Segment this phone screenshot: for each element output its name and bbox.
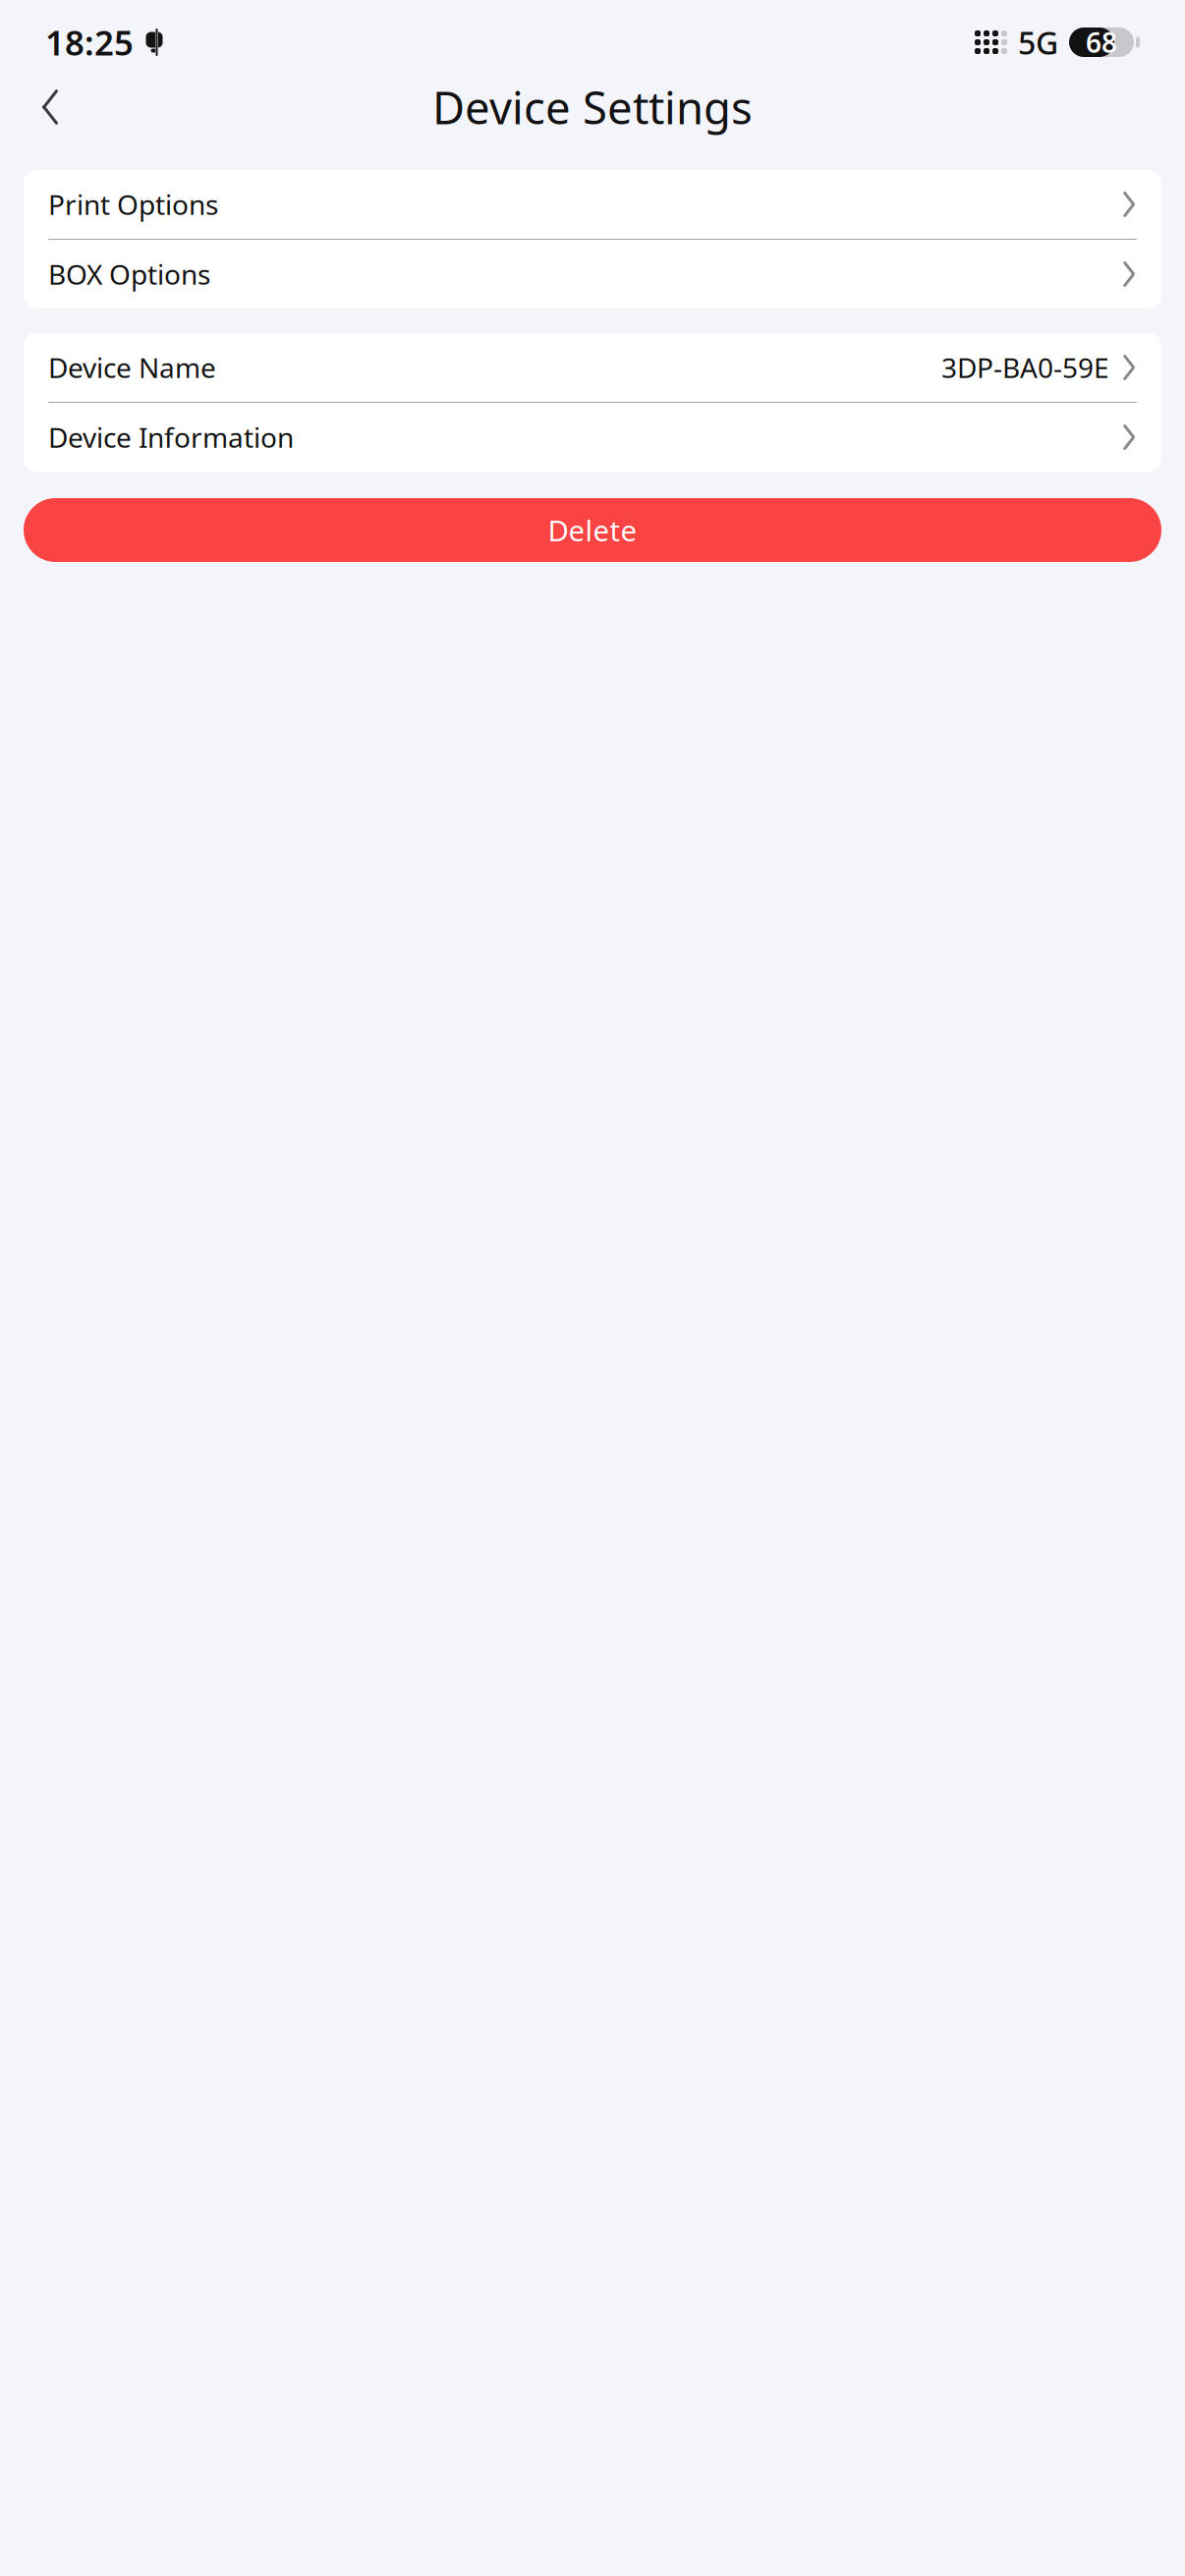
button[interactable]: Print Options (24, 170, 1161, 239)
button[interactable]: BOX Options (24, 240, 1161, 308)
staticText: 68 (1086, 24, 1117, 61)
button[interactable]: Device Information (24, 403, 1161, 472)
staticText: 3DP-BA0-59E (941, 349, 1109, 386)
staticText: Print Options (48, 186, 218, 223)
staticText: 5G (1018, 21, 1058, 63)
staticText: Delete (548, 511, 637, 549)
button[interactable]: Device Name (24, 333, 1161, 402)
staticText: 18:25 (45, 20, 134, 65)
staticText: BOX Options (48, 256, 210, 292)
staticText: Device Information (48, 419, 294, 455)
button[interactable]: Delete (24, 498, 1161, 562)
staticText: Device Name (48, 349, 216, 386)
staticText: Device Settings (432, 78, 753, 137)
button[interactable]: Back (22, 79, 79, 136)
